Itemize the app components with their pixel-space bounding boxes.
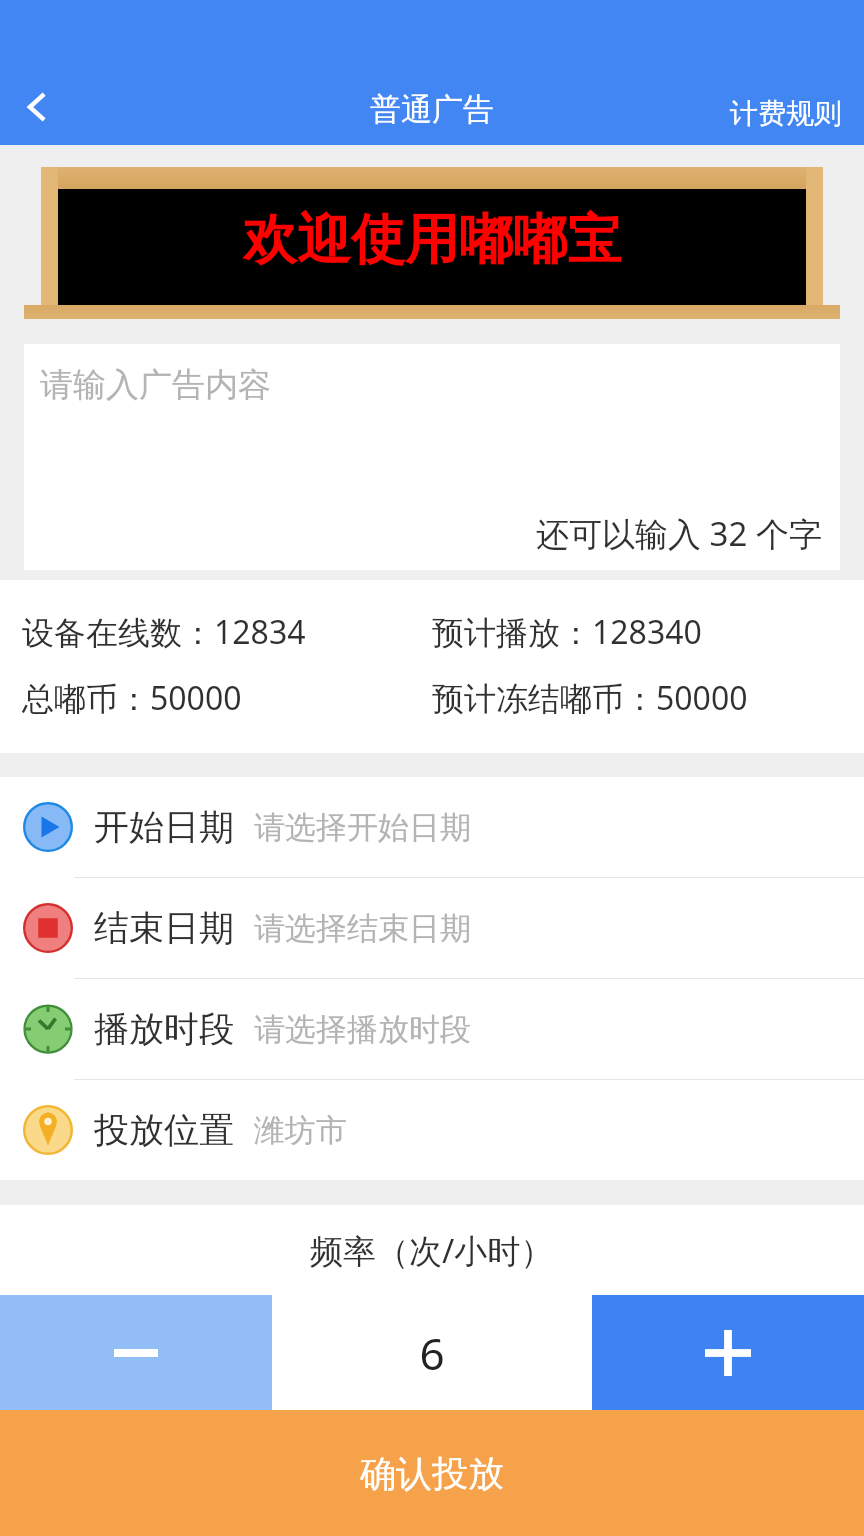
staticText: 播放时段 (94, 1007, 234, 1051)
staticText: 预计播放：128340 (432, 610, 702, 654)
staticText: 频率（次/小时） (310, 1228, 554, 1273)
button[interactable]: Back (0, 69, 76, 145)
button[interactable]: 投放位置 (0, 1080, 864, 1180)
button[interactable]: 请输入广告内容 (24, 344, 840, 570)
staticText: 结束日期 (94, 906, 234, 950)
staticText: 确认投放 (360, 1451, 504, 1496)
staticText: 欢迎使用嘟嘟宝 (243, 206, 621, 274)
staticText: 请选择开始日期 (254, 808, 471, 847)
staticText: 普通广告 (370, 90, 494, 129)
staticText: 预计冻结嘟币：50000 (432, 676, 748, 720)
staticText: 还可以输入 32 个字 (536, 511, 822, 556)
staticText: 设备在线数：12834 (22, 610, 432, 654)
button[interactable]: Increase frequency (592, 1295, 864, 1410)
button[interactable]: Decrease frequency (0, 1295, 272, 1410)
staticText: 请输入广告内容 (40, 364, 271, 406)
staticText: 计费规则 (730, 96, 842, 131)
button[interactable]: 计费规则 (710, 82, 864, 145)
button[interactable]: 开始日期 (0, 777, 864, 877)
staticText: 潍坊市 (254, 1111, 347, 1150)
staticText: 开始日期 (94, 805, 234, 849)
staticText: 投放位置 (94, 1108, 234, 1152)
button[interactable]: 播放时段 (0, 979, 864, 1079)
staticText: 总嘟币：50000 (22, 676, 432, 720)
staticText: 6 (419, 1323, 445, 1383)
button[interactable]: 结束日期 (0, 878, 864, 978)
button[interactable]: 确认投放 (0, 1410, 864, 1536)
staticText: 请选择结束日期 (254, 909, 471, 948)
staticText: 请选择播放时段 (254, 1010, 471, 1049)
